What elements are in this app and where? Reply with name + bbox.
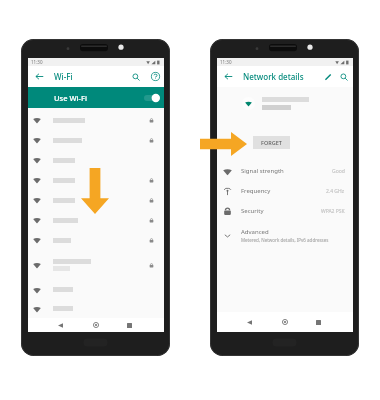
- button[interactable]: [28, 230, 164, 250]
- staticText: Wi-Fi: [54, 71, 73, 82]
- button[interactable]: Frequency: [217, 181, 353, 201]
- staticText: 11:30: [31, 59, 43, 65]
- button[interactable]: Advanced: [217, 223, 353, 247]
- button[interactable]: Home: [276, 312, 293, 332]
- button[interactable]: [28, 110, 164, 130]
- staticText: Network details: [243, 71, 304, 82]
- button[interactable]: Security: [217, 201, 353, 221]
- button[interactable]: [28, 130, 164, 150]
- staticText: Security: [241, 207, 264, 215]
- staticText: Frequency: [241, 187, 271, 195]
- staticText: Good: [332, 168, 345, 175]
- staticText: Use Wi-Fi: [54, 93, 87, 103]
- button[interactable]: Search: [336, 66, 351, 87]
- button[interactable]: Home: [87, 318, 104, 332]
- button[interactable]: Edit: [320, 66, 335, 87]
- button[interactable]: [28, 299, 164, 318]
- button[interactable]: Recents: [310, 312, 327, 332]
- button[interactable]: Use Wi-Fi: [28, 87, 164, 108]
- button[interactable]: Search: [128, 66, 144, 87]
- staticText: WPA2 PSK: [321, 208, 345, 215]
- button[interactable]: Signal strength: [217, 161, 353, 181]
- staticText: Advanced: [241, 228, 269, 236]
- button[interactable]: [28, 280, 164, 299]
- staticText: Signal strength: [241, 167, 284, 175]
- button[interactable]: Help: [147, 66, 163, 87]
- button[interactable]: Back: [241, 312, 258, 332]
- button[interactable]: [28, 250, 164, 280]
- staticText: Metered, Network details, IPv6 addresses: [241, 237, 329, 243]
- button[interactable]: [28, 170, 164, 190]
- button[interactable]: [28, 190, 164, 210]
- staticText: 11:30: [220, 59, 232, 65]
- button[interactable]: [28, 150, 164, 170]
- staticText: FORGET: [261, 139, 282, 146]
- button[interactable]: [28, 210, 164, 230]
- button[interactable]: Back: [221, 66, 235, 87]
- button[interactable]: Back: [52, 318, 69, 332]
- button[interactable]: Back: [32, 66, 46, 87]
- staticText: 2.4 GHz: [326, 188, 345, 195]
- button[interactable]: Recents: [121, 318, 138, 332]
- button[interactable]: FORGET: [253, 136, 290, 149]
